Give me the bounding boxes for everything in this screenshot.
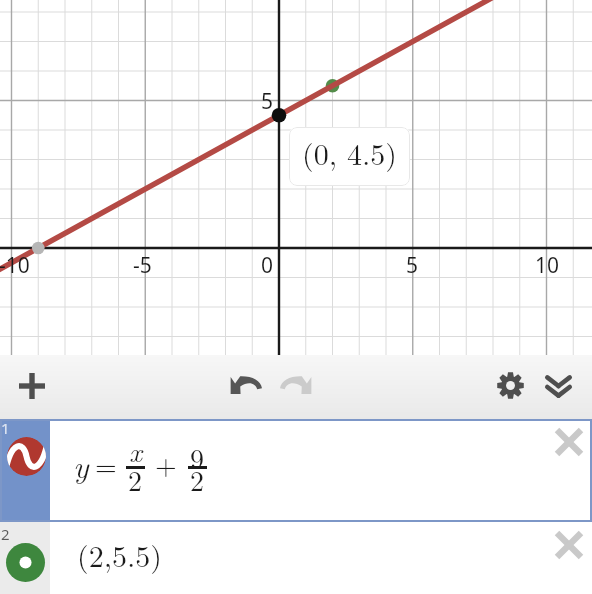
button[interactable]: Undo: [220, 359, 272, 411]
staticText: 2: [1, 524, 10, 544]
staticText: -5: [133, 251, 152, 280]
staticText: 10: [535, 251, 560, 280]
staticText: x: [129, 430, 142, 470]
button[interactable]: Redo: [270, 359, 322, 411]
staticText: 9: [190, 437, 205, 477]
staticText: 2: [190, 459, 205, 499]
staticText: =: [95, 444, 117, 484]
button[interactable]: 2: [0, 522, 592, 594]
staticText: (0, 4.5): [302, 131, 398, 174]
staticText: 5: [406, 251, 419, 280]
button[interactable]: Settings: [484, 359, 536, 411]
button[interactable]: Delete expression 2: [546, 522, 592, 568]
button[interactable]: Collapse expression list: [532, 361, 584, 413]
button[interactable]: Delete expression 1: [546, 419, 592, 465]
staticText: 2: [128, 459, 143, 499]
button[interactable]: Add expression: [6, 360, 58, 412]
staticText: 5: [261, 87, 274, 116]
staticText: -10: [0, 251, 30, 280]
staticText: 0: [261, 251, 274, 280]
button[interactable]: (0, 4.5): [289, 127, 410, 186]
button[interactable]: 1: [0, 419, 592, 522]
staticText: 1: [1, 418, 10, 438]
staticText: (2,5.5): [77, 533, 163, 576]
staticText: y: [73, 442, 89, 487]
staticText: +: [155, 443, 177, 483]
